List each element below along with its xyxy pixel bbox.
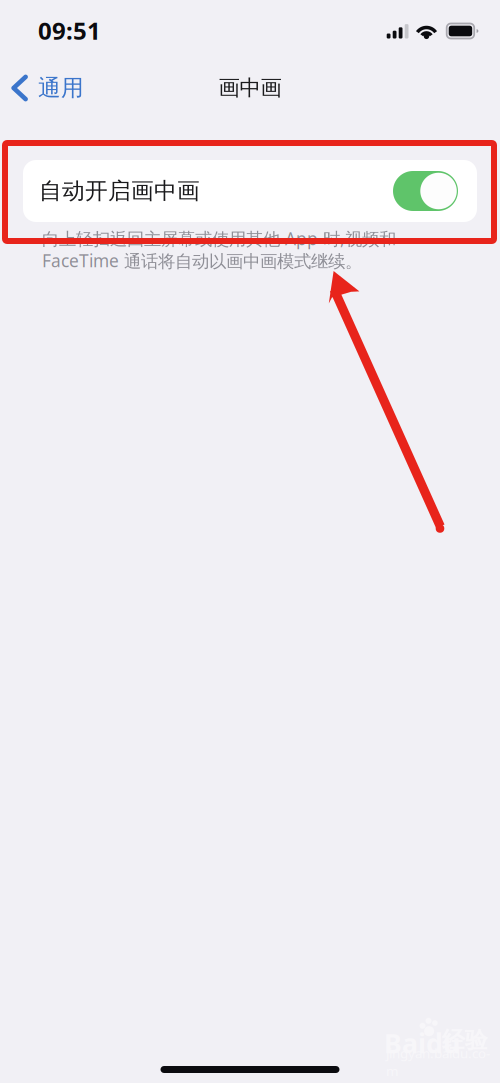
staticText: 09:51 (38, 15, 101, 46)
staticText: 画中画 (218, 75, 281, 101)
staticText: FaceTime 通话将自动以画中画模式继续。 (42, 249, 362, 272)
staticText: 通用 (38, 74, 84, 102)
button[interactable]: 通用 (0, 69, 94, 107)
staticText: 自动开启画中画 (39, 177, 200, 205)
button[interactable]: 自动开启画中画 (23, 160, 477, 222)
staticText: 向上轻扫返回主屏幕或使用其他 App 时,视频和 (42, 227, 396, 250)
